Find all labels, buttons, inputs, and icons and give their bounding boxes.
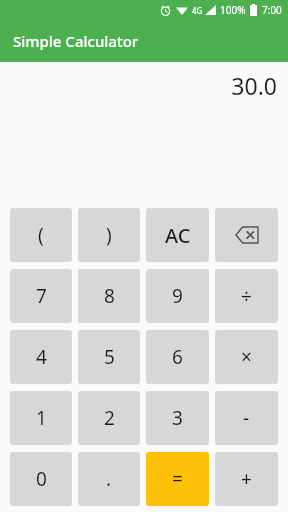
button[interactable]: AC	[146, 208, 209, 262]
button[interactable]: 7	[10, 269, 72, 323]
staticText: 3	[172, 405, 183, 431]
button[interactable]: 3	[146, 391, 209, 445]
staticText: 6	[172, 344, 183, 370]
button[interactable]: 8	[78, 269, 140, 323]
button[interactable]: ÷	[215, 269, 278, 323]
button[interactable]: )	[78, 208, 140, 262]
button[interactable]: Backspace	[215, 208, 278, 262]
button[interactable]: (	[10, 208, 72, 262]
staticText: -	[243, 405, 250, 431]
staticText: 8	[104, 283, 115, 309]
staticText: 30.0	[231, 70, 277, 101]
staticText: .	[106, 466, 112, 492]
button[interactable]: 6	[146, 330, 209, 384]
staticText: 100%	[220, 3, 246, 17]
button[interactable]: 5	[78, 330, 140, 384]
button[interactable]: =	[146, 452, 209, 506]
button[interactable]: 4	[10, 330, 72, 384]
button[interactable]: ×	[215, 330, 278, 384]
button[interactable]: 9	[146, 269, 209, 323]
staticText: 0	[36, 466, 47, 492]
staticText: 2	[104, 405, 115, 431]
staticText: 9	[172, 283, 183, 309]
staticText: 5	[104, 344, 115, 370]
staticText: ×	[241, 344, 252, 370]
staticText: AC	[165, 222, 191, 249]
staticText: 1	[36, 405, 47, 431]
staticText: 7	[36, 283, 47, 309]
button[interactable]: 2	[78, 391, 140, 445]
staticText: 4	[36, 344, 47, 370]
button[interactable]: 0	[10, 452, 72, 506]
staticText: )	[106, 222, 112, 248]
staticText: ÷	[241, 283, 252, 309]
staticText: (	[38, 222, 44, 248]
staticText: 4G	[192, 5, 203, 16]
button[interactable]: .	[78, 452, 140, 506]
button[interactable]: -	[215, 391, 278, 445]
staticText: =	[172, 466, 183, 492]
button[interactable]: 1	[10, 391, 72, 445]
staticText: 7:00	[262, 3, 282, 17]
staticText: Simple Calculator	[13, 31, 139, 51]
staticText: +	[241, 466, 252, 492]
button[interactable]: +	[215, 452, 278, 506]
